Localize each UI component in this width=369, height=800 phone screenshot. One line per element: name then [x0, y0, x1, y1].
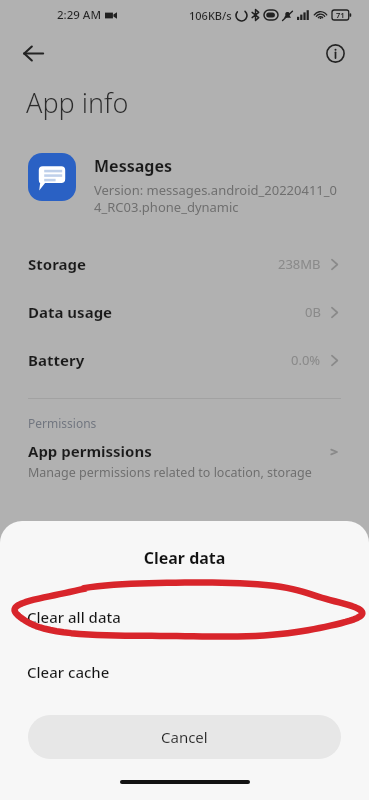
staticText: 238MB	[278, 255, 321, 273]
staticText: Data usage	[28, 302, 113, 322]
button[interactable]: Data usage	[0, 288, 369, 336]
button[interactable]: Storage	[0, 240, 369, 288]
staticText: Clear data	[0, 547, 369, 569]
button[interactable]: Battery	[0, 336, 369, 384]
staticText: 2:29 AM	[57, 7, 101, 23]
staticText: App permissions	[28, 441, 152, 461]
button[interactable]: Clear cache	[0, 644, 369, 699]
button[interactable]: App details	[317, 35, 353, 71]
button[interactable]: Back	[14, 34, 52, 72]
staticText: Battery	[28, 350, 85, 370]
staticText: Permissions	[28, 415, 97, 431]
staticText: Cancel	[161, 727, 208, 747]
staticText: Messages	[94, 155, 172, 177]
button[interactable]: Clear all data	[0, 589, 369, 644]
staticText: Manage permissions related to location, …	[28, 464, 312, 481]
staticText: Clear all data	[27, 607, 121, 627]
staticText: 71	[336, 10, 345, 20]
staticText: 0B	[305, 303, 321, 321]
staticText: App info	[26, 84, 129, 121]
staticText: Version: messages.android_20220411_04_RC…	[94, 181, 341, 216]
button[interactable]: App permissions	[0, 441, 369, 481]
staticText: 0.0%	[291, 351, 321, 369]
staticText: 106KB/s	[189, 8, 232, 23]
staticText: Clear cache	[27, 662, 110, 682]
staticText: Storage	[28, 254, 86, 274]
button[interactable]: Cancel	[28, 715, 341, 759]
